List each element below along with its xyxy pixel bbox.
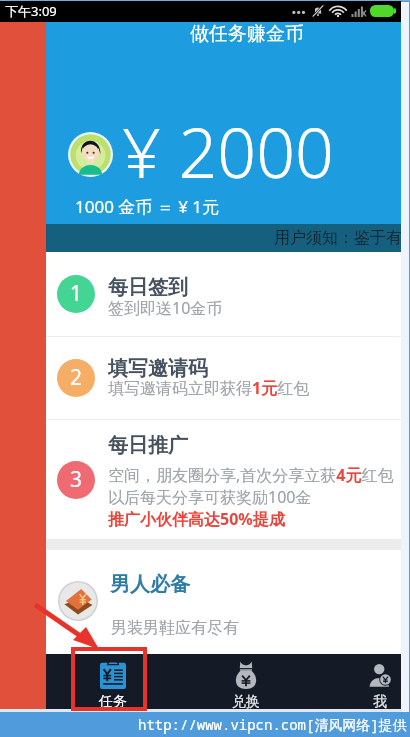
staticText: 男人必备 — [110, 572, 190, 597]
button[interactable]: 2 — [46, 337, 401, 419]
staticText: 推广小伙伴高达50%提成 — [108, 508, 285, 530]
staticText: 每日推广 — [108, 433, 188, 458]
staticText: 任务 — [99, 693, 127, 709]
button[interactable]: Tasks — [46, 654, 179, 709]
staticText: 下午3:09 — [5, 2, 57, 20]
button[interactable]: Exchange — [179, 654, 313, 709]
staticText: http://www.vipcn.com[清风网络]提供 — [138, 715, 407, 734]
staticText: 以后每天分享可获奖励100金 — [108, 486, 312, 508]
staticText: 男装男鞋应有尽有 — [111, 618, 239, 638]
staticText: 我 — [373, 693, 387, 709]
button[interactable]: 1 — [46, 252, 401, 336]
staticText: 1 — [70, 279, 83, 308]
staticText: 兑换 — [232, 693, 260, 709]
staticText: 每日签到 — [108, 275, 188, 300]
staticText: 做任务赚金币 — [190, 22, 304, 46]
staticText: 空间，朋友圈分享,首次分享立获4元红包 — [108, 464, 394, 486]
staticText: ¥ 2000 — [122, 105, 334, 198]
staticText: 填写邀请码 — [108, 356, 208, 381]
button[interactable]: Profile — [313, 654, 401, 709]
staticText: 填写邀请码立即获得1元红包 — [108, 377, 310, 399]
staticText: 2 — [70, 363, 83, 392]
staticText: 1000 金币 ＝ ¥ 1元 — [75, 195, 220, 218]
staticText: 签到即送10金币 — [108, 297, 223, 319]
button[interactable]: 3 — [46, 420, 401, 539]
staticText: 用户须知：鉴于有些用户恶意刷单 — [274, 228, 401, 248]
staticText: 3 — [70, 465, 83, 494]
button[interactable]: 男人必备 — [46, 550, 401, 654]
